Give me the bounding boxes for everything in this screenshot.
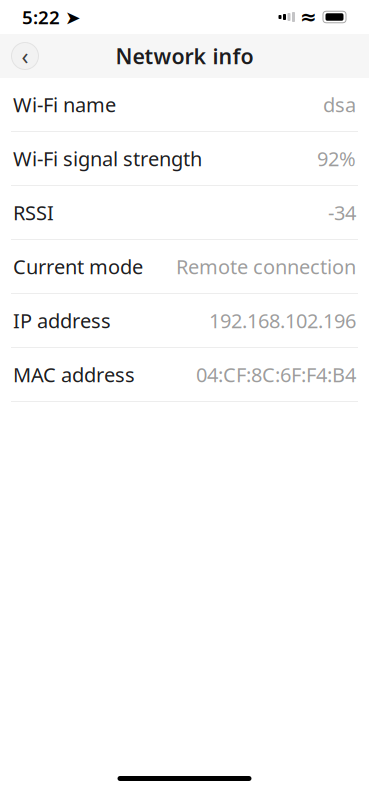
staticText: Wi-Fi name — [13, 91, 116, 118]
staticText: 04:CF:8C:6F:F4:B4 — [196, 361, 356, 388]
staticText: -34 — [328, 199, 356, 226]
staticText: Current mode — [13, 253, 143, 280]
staticText: 5:22 ➤ — [22, 5, 81, 29]
staticText: Network info — [115, 42, 253, 70]
staticText: ‹ — [21, 41, 28, 71]
button[interactable]: Back — [3, 34, 47, 78]
staticText: RSSI — [13, 199, 54, 226]
staticText: ≈ — [300, 6, 317, 28]
staticText: Wi-Fi signal strength — [13, 145, 202, 172]
staticText: dsa — [323, 91, 356, 118]
staticText: IP address — [13, 307, 111, 334]
staticText: 92% — [317, 145, 356, 172]
staticText: MAC address — [13, 361, 135, 388]
staticText: 192.168.102.196 — [209, 307, 356, 334]
staticText: Remote connection — [176, 253, 356, 280]
